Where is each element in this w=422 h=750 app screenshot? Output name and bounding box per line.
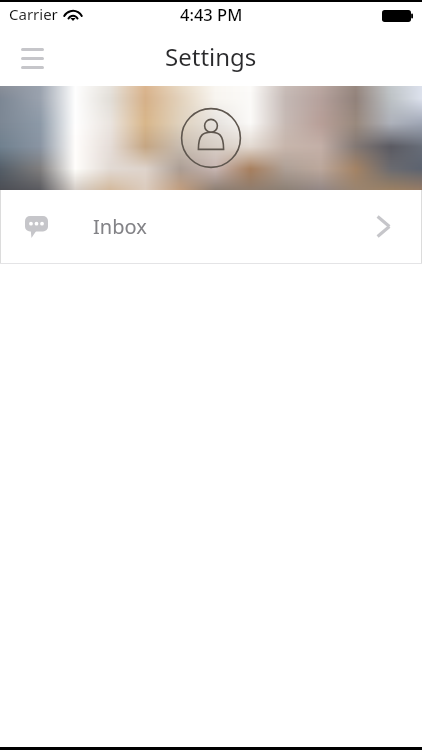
staticText: Carrier <box>9 4 58 24</box>
button[interactable]: Inbox <box>0 190 422 263</box>
button[interactable]: Menu <box>10 36 54 80</box>
staticText: Inbox <box>93 213 147 240</box>
button[interactable]: Profile photo <box>180 107 242 169</box>
staticText: 4:43 PM <box>180 3 243 25</box>
staticText: Settings <box>165 40 257 73</box>
